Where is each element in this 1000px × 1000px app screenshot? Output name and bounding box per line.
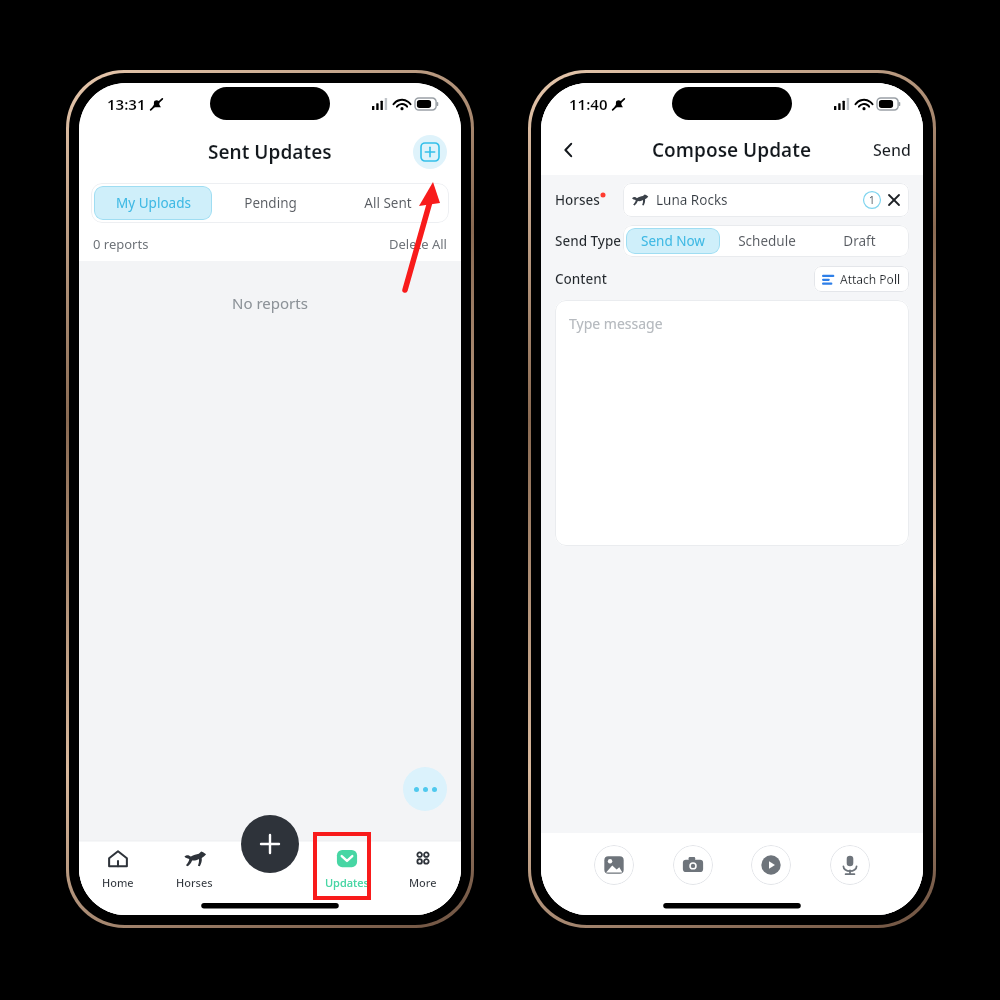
button[interactable]: Send Now <box>626 228 720 254</box>
button[interactable]: Home <box>79 847 156 915</box>
button[interactable]: Photo library <box>594 845 634 885</box>
button[interactable]: Type message <box>555 300 909 546</box>
staticText: 13:31 <box>107 94 146 114</box>
staticText: Luna Rocks <box>656 191 728 209</box>
staticText: My Uploads <box>116 194 191 212</box>
staticText: Horses <box>555 191 600 209</box>
button[interactable]: Horses <box>156 847 233 915</box>
staticText: 1 <box>869 193 875 207</box>
button[interactable]: Clear horses <box>887 193 901 207</box>
staticText: Updates <box>325 875 369 890</box>
button[interactable]: Pending <box>212 186 329 220</box>
staticText: Send <box>873 139 911 161</box>
button[interactable]: Updates <box>309 847 385 915</box>
staticText: More <box>409 875 437 890</box>
staticText: Draft <box>843 232 876 250</box>
button[interactable]: More <box>385 847 461 915</box>
button[interactable]: All Sent <box>329 186 446 220</box>
button[interactable]: Back <box>551 132 587 168</box>
button[interactable]: Attach Poll <box>822 266 901 292</box>
staticText: Home <box>102 875 134 890</box>
staticText: No reports <box>232 293 308 313</box>
button[interactable]: Camera <box>673 845 713 885</box>
staticText: Send Type <box>555 232 623 250</box>
button[interactable]: Voice note <box>830 845 870 885</box>
staticText: Compose Update <box>652 137 812 163</box>
staticText: Horses <box>176 875 213 890</box>
staticText: Sent Updates <box>208 139 332 165</box>
button[interactable]: Video <box>751 845 791 885</box>
staticText: 11:40 <box>569 94 608 114</box>
staticText: All Sent <box>364 194 412 212</box>
staticText: Delete All <box>389 235 447 253</box>
button[interactable]: Add <box>241 815 299 873</box>
button[interactable]: Luna Rocks <box>631 183 901 217</box>
button[interactable]: Delete All <box>389 235 447 253</box>
button[interactable]: Draft <box>813 228 906 254</box>
staticText: 0 reports <box>93 235 149 253</box>
staticText: Schedule <box>738 232 796 250</box>
staticText: Type message <box>569 314 663 333</box>
staticText: Attach Poll <box>840 271 901 287</box>
staticText: Send Now <box>641 232 705 250</box>
staticText: Content <box>555 270 607 288</box>
button[interactable]: Schedule <box>720 228 813 254</box>
button[interactable]: My Uploads <box>94 186 212 220</box>
button[interactable]: New update <box>413 135 447 169</box>
staticText: Pending <box>244 194 297 212</box>
button[interactable]: Send <box>873 139 911 161</box>
button[interactable]: More options <box>403 767 447 811</box>
